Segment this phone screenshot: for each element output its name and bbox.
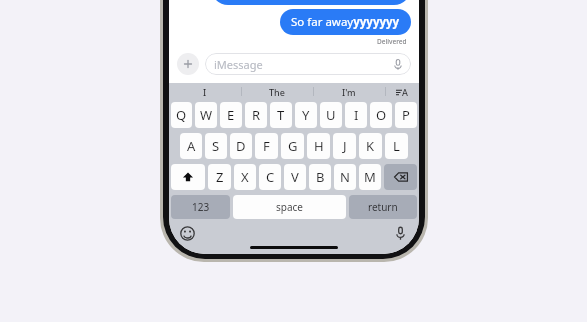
button[interactable]: G: [281, 133, 304, 159]
staticText: L: [393, 137, 400, 155]
staticText: I'm: [342, 86, 356, 98]
staticText: X: [241, 168, 249, 186]
staticText: K: [366, 137, 375, 155]
button[interactable]: X: [234, 164, 256, 190]
button[interactable]: F: [255, 133, 278, 159]
staticText: E: [227, 106, 235, 124]
staticText: U: [326, 106, 336, 124]
button[interactable]: I'm: [313, 83, 385, 100]
button[interactable]: T: [270, 102, 292, 128]
button[interactable]: Backspace: [384, 164, 417, 190]
staticText: H: [314, 137, 324, 155]
staticText: W: [200, 106, 213, 124]
button[interactable]: A: [180, 133, 202, 159]
staticText: T: [277, 106, 285, 124]
button[interactable]: Text formatting: [385, 83, 419, 100]
button[interactable]: H: [307, 133, 330, 159]
staticText: D: [236, 137, 246, 155]
button[interactable]: Y: [295, 102, 317, 128]
button[interactable]: The: [241, 83, 313, 100]
button[interactable]: K: [359, 133, 382, 159]
button[interactable]: U: [320, 102, 342, 128]
button[interactable]: Emoji keyboard: [180, 226, 195, 241]
button[interactable]: 123: [171, 195, 230, 219]
staticText: A: [187, 137, 196, 155]
staticText: F: [263, 137, 270, 155]
button[interactable]: Shift: [171, 164, 205, 190]
button[interactable]: N: [334, 164, 356, 190]
button[interactable]: J: [333, 133, 356, 159]
staticText: Y: [302, 106, 310, 124]
button[interactable]: L: [385, 133, 408, 159]
staticText: M: [364, 168, 376, 186]
staticText: I: [354, 106, 359, 124]
staticText: The: [269, 86, 285, 98]
button[interactable]: W: [195, 102, 217, 128]
button[interactable]: M: [359, 164, 381, 190]
button[interactable]: Dictation: [393, 226, 408, 241]
button[interactable]: Z: [208, 164, 231, 190]
staticText: P: [402, 106, 410, 124]
staticText: I: [203, 86, 207, 98]
staticText: So far awayyyyyyyy: [291, 14, 400, 30]
staticText: C: [266, 168, 275, 186]
staticText: V: [291, 168, 299, 186]
button[interactable]: space: [233, 195, 346, 219]
button[interactable]: iMessage: [205, 53, 411, 75]
button[interactable]: O: [370, 102, 392, 128]
staticText: O: [376, 106, 387, 124]
button[interactable]: B: [309, 164, 331, 190]
staticText: R: [252, 106, 261, 124]
staticText: iMessage: [214, 57, 394, 72]
staticText: N: [340, 168, 350, 186]
button[interactable]: S: [205, 133, 227, 159]
other: Dictate: [394, 59, 402, 70]
button[interactable]: P: [395, 102, 417, 128]
button[interactable]: V: [284, 164, 306, 190]
button[interactable]: Q: [171, 102, 192, 128]
staticText: A: [402, 86, 408, 98]
staticText: G: [288, 137, 298, 155]
staticText: B: [316, 168, 325, 186]
button[interactable]: Add attachment: [177, 53, 199, 75]
staticText: Delivered: [377, 37, 407, 46]
staticText: J: [343, 137, 347, 155]
button[interactable]: I: [345, 102, 367, 128]
staticText: Z: [216, 168, 224, 186]
button[interactable]: return: [349, 195, 417, 219]
button[interactable]: D: [230, 133, 252, 159]
button[interactable]: I: [169, 83, 241, 100]
button[interactable]: C: [259, 164, 281, 190]
staticText: Q: [176, 106, 187, 124]
staticText: S: [212, 137, 220, 155]
staticText: 123: [192, 200, 210, 214]
staticText: space: [276, 200, 303, 214]
button[interactable]: R: [245, 102, 267, 128]
staticText: return: [368, 200, 398, 214]
button[interactable]: E: [220, 102, 242, 128]
